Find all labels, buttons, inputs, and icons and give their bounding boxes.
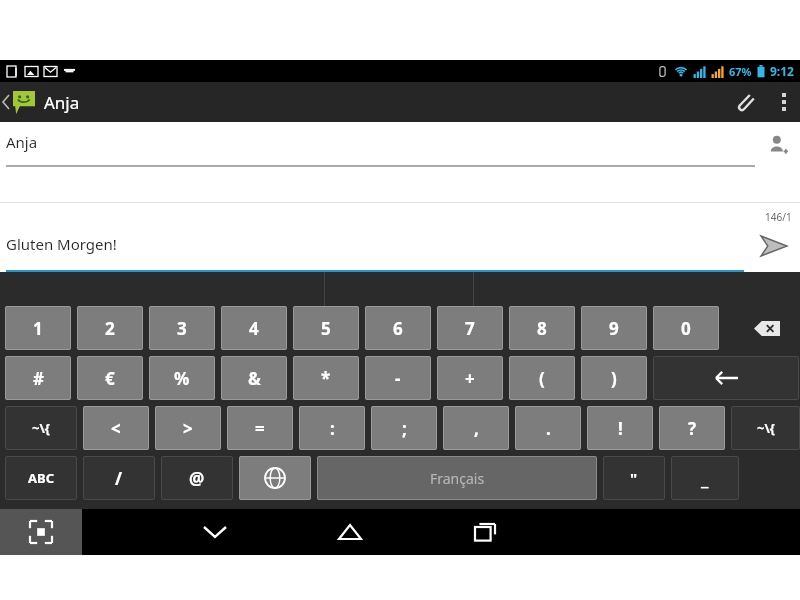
button[interactable]: 8 [509,306,575,350]
staticText: 0 [681,317,691,340]
staticText: Gluten Morgen! [6,234,117,254]
button[interactable]: More options [768,82,800,122]
button[interactable]: / [83,456,155,500]
staticText: . [546,417,551,440]
button[interactable]: . [515,406,581,450]
staticText: Anja [44,91,80,114]
button[interactable]: Back [0,82,38,122]
button[interactable]: Backspace [733,306,800,350]
staticText: " [630,468,638,488]
staticText: = [255,417,265,440]
button[interactable]: ~\{ [5,406,77,450]
staticText: 9:12 [770,63,794,79]
staticText: ( [539,367,545,390]
staticText: Français [430,469,485,488]
button[interactable]: = [227,406,293,450]
button[interactable]: 7 [437,306,503,350]
staticText: : [330,417,335,440]
button[interactable]: > [155,406,221,450]
button[interactable]: ? [659,406,725,450]
button[interactable]: @ [161,456,233,500]
button[interactable]: Screenshot [0,509,82,555]
button[interactable]: , [443,406,509,450]
staticText: ? [688,417,697,440]
staticText: & [248,367,261,390]
button[interactable]: 9 [581,306,647,350]
staticText: % [174,367,190,390]
staticText: 3 [177,317,187,340]
button[interactable]: * [293,356,359,400]
button[interactable]: 3 [149,306,215,350]
button[interactable]: & [221,356,287,400]
button[interactable]: 5 [293,306,359,350]
staticText: 4 [249,317,259,340]
button[interactable]: Send [748,220,800,272]
button[interactable]: ; [371,406,437,450]
button[interactable]: Français [317,456,597,500]
staticText: ~\{ [757,419,775,437]
button[interactable]: " [603,456,665,500]
staticText: * [321,367,331,390]
button[interactable]: ~\{ [731,406,800,450]
staticText: @ [189,467,205,490]
staticText: + [465,367,475,390]
button[interactable]: Enter [653,356,799,400]
staticText: > [183,417,193,440]
button[interactable]: < [83,406,149,450]
button[interactable]: 0 [653,306,719,350]
button[interactable]: Attach [722,82,768,122]
staticText: - [395,367,401,390]
staticText: # [33,367,44,390]
button[interactable]: € [77,356,143,400]
staticText: / [115,467,123,490]
staticText: ~\{ [32,419,50,437]
staticText: 1 [33,317,43,340]
button[interactable]: 6 [365,306,431,350]
button[interactable]: 1 [5,306,71,350]
button[interactable]: _ [671,456,739,500]
staticText: 146/1 [765,210,792,224]
button[interactable]: Home [315,509,385,555]
staticText: _ [701,466,709,491]
staticText: 5 [321,317,331,340]
staticText: Anja [6,132,38,152]
button[interactable]: Back [180,509,250,555]
button[interactable]: 4 [221,306,287,350]
button[interactable]: 2 [77,306,143,350]
button[interactable]: # [5,356,71,400]
button[interactable]: ABC [5,456,77,500]
staticText: 8 [537,317,547,340]
button[interactable]: ! [587,406,653,450]
staticText: 2 [105,317,115,340]
button[interactable]: : [299,406,365,450]
button[interactable]: Add contact [756,123,800,167]
staticText: 6 [393,317,403,340]
button[interactable]: Recent apps [450,509,520,555]
button[interactable]: ( [509,356,575,400]
staticText: ! [618,417,623,440]
staticText: € [105,367,115,390]
button[interactable]: % [149,356,215,400]
staticText: ; [402,417,407,440]
button[interactable]: Anja [6,122,755,167]
staticText: < [111,417,121,440]
button[interactable]: Change language [239,456,311,500]
staticText: 67% [729,64,752,79]
staticText: 9 [609,317,619,340]
staticText: ) [611,367,617,390]
button[interactable]: - [365,356,431,400]
staticText: , [474,417,479,440]
button[interactable]: Gluten Morgen! [6,220,744,272]
button[interactable]: ) [581,356,647,400]
staticText: 7 [465,317,475,340]
button[interactable]: + [437,356,503,400]
staticText: ABC [28,469,54,487]
